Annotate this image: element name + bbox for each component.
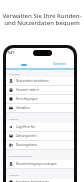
button[interactable]: Berechtigungen <box>6 95 74 103</box>
button[interactable]: Passwort ändern <box>6 86 74 94</box>
staticText: Benachrichtigungen anzeigen <box>16 162 57 166</box>
staticText: Nutzungsdaten <box>16 143 37 147</box>
staticText: Passwort ändern <box>16 88 39 92</box>
staticText: Weiteres <box>9 173 19 176</box>
button[interactable]: Verwalten <box>6 104 74 112</box>
staticText: Allgemein <box>9 72 21 75</box>
staticText: 9:41 <box>8 51 14 55</box>
staticText: Zahlung <box>9 117 19 120</box>
button[interactable]: Nutzungsdaten <box>6 141 74 149</box>
staticText: Verwalten Sie Ihre Kunden- <box>2 11 82 19</box>
button[interactable]: Nutzerdaten bearbeiten <box>6 77 74 85</box>
button[interactable]: Zurueck <box>20 62 27 65</box>
staticText: und Nutzerdaten bequem <box>4 18 80 26</box>
staticText: Berechtigungen <box>16 97 38 101</box>
staticText: Verwalten <box>16 106 30 110</box>
button[interactable]: Optionen <box>53 61 74 65</box>
staticText: Zugriffsrechte <box>16 125 36 129</box>
button[interactable]: Benachrichtigungen anzeigen <box>6 160 74 168</box>
staticText: Optionen <box>53 62 66 66</box>
staticText: Nutzerdaten bearbeiten <box>16 79 49 83</box>
button[interactable]: Zahlungsmittel <box>6 132 74 140</box>
staticText: Erweiterte Einstellungen <box>16 180 50 182</box>
button[interactable]: Zugriffsrechte <box>6 123 74 131</box>
staticText: Benachrichtigungen <box>9 154 32 157</box>
staticText: Zahlungsmittel <box>16 134 37 138</box>
button[interactable]: Erweiterte Einstellungen <box>6 179 74 182</box>
